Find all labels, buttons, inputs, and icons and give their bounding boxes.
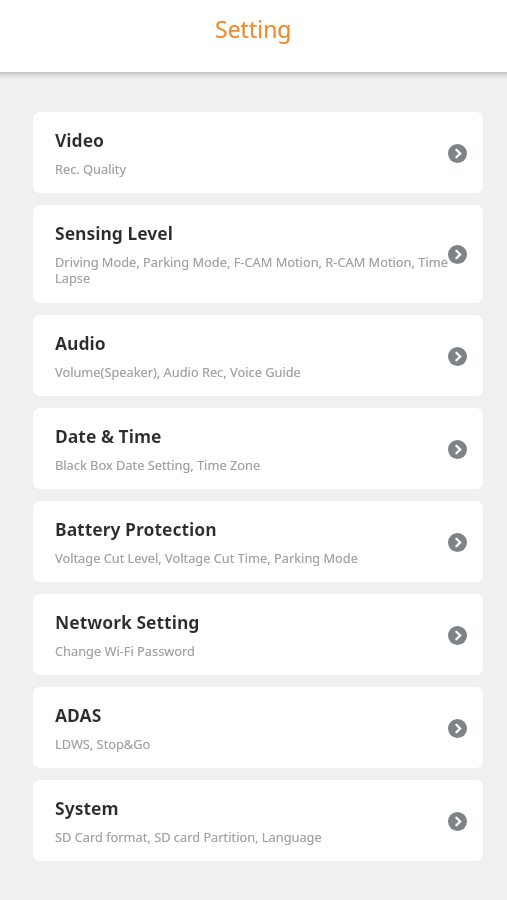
- staticText: Driving Mode, Parking Mode, F-CAM Motion…: [55, 253, 471, 287]
- button[interactable]: Sensing Level: [33, 205, 483, 303]
- staticText: Battery Protection: [55, 517, 217, 541]
- button[interactable]: Video: [33, 112, 483, 193]
- button[interactable]: Battery Protection: [33, 501, 483, 582]
- other: Open Sensing Level: [443, 240, 471, 268]
- staticText: ADAS: [55, 703, 102, 727]
- other: Open Network Setting: [443, 621, 471, 649]
- other: Open Battery Protection: [443, 528, 471, 556]
- other: Open System: [443, 807, 471, 835]
- staticText: Audio: [55, 331, 106, 355]
- other: Open Audio: [443, 342, 471, 370]
- staticText: SD Card format, SD card Partition, Langu…: [55, 828, 322, 845]
- button[interactable]: System: [33, 780, 483, 861]
- button[interactable]: Audio: [33, 315, 483, 396]
- other: Open Date & Time: [443, 435, 471, 463]
- staticText: System: [55, 796, 119, 820]
- staticText: Sensing Level: [55, 221, 174, 245]
- staticText: Setting: [215, 13, 292, 44]
- staticText: Video: [55, 128, 105, 152]
- button[interactable]: Network Setting: [33, 594, 483, 675]
- other: Open Video: [443, 139, 471, 167]
- other: Open ADAS: [443, 714, 471, 742]
- staticText: Rec. Quality: [55, 160, 126, 177]
- staticText: Change Wi-Fi Password: [55, 642, 195, 659]
- staticText: Black Box Date Setting, Time Zone: [55, 456, 261, 473]
- staticText: Voltage Cut Level, Voltage Cut Time, Par…: [55, 549, 358, 566]
- button[interactable]: ADAS: [33, 687, 483, 768]
- staticText: Volume(Speaker), Audio Rec, Voice Guide: [55, 363, 301, 380]
- staticText: Network Setting: [55, 610, 200, 634]
- staticText: LDWS, Stop&Go: [55, 735, 151, 752]
- button[interactable]: Date & Time: [33, 408, 483, 489]
- staticText: Date & Time: [55, 424, 162, 448]
